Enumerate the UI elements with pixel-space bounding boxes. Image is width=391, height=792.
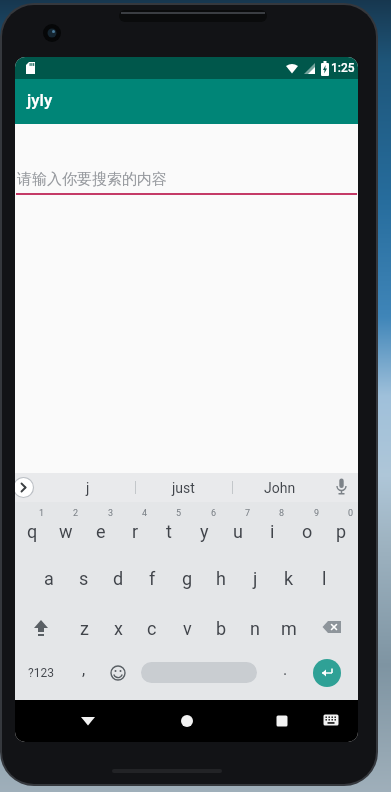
staticText: 1:25 — [331, 61, 355, 75]
button[interactable]: just — [143, 473, 223, 502]
staticText: 2 — [73, 508, 79, 519]
staticText: e — [96, 521, 106, 542]
button[interactable]: 请输入你要搜索的内容 — [15, 164, 358, 204]
staticText: f — [149, 568, 156, 589]
staticText: 8 — [279, 508, 285, 519]
button[interactable]: k — [272, 555, 306, 601]
button[interactable]: c — [135, 605, 169, 651]
button[interactable]: m — [272, 605, 306, 651]
staticText: just — [172, 480, 195, 496]
button[interactable] — [309, 605, 355, 651]
staticText: 0 — [348, 508, 354, 519]
staticText: s — [79, 568, 89, 589]
button[interactable]: v — [170, 605, 204, 651]
button[interactable]: z — [67, 605, 101, 651]
button[interactable]: t — [152, 508, 186, 554]
staticText: 7 — [245, 508, 251, 519]
staticText: w — [59, 521, 73, 542]
button[interactable] — [15, 477, 34, 498]
button[interactable]: s — [67, 555, 101, 601]
button[interactable]: j — [238, 555, 272, 601]
button[interactable]: l — [307, 555, 341, 601]
button[interactable]: ?123 — [18, 652, 64, 694]
button[interactable]: John — [240, 473, 320, 502]
staticText: r — [132, 521, 139, 542]
button[interactable] — [317, 706, 345, 734]
staticText: m — [281, 618, 297, 639]
staticText: o — [302, 521, 313, 542]
staticText: x — [114, 618, 123, 639]
staticText: ?123 — [28, 666, 54, 680]
button[interactable]: i — [255, 508, 289, 554]
staticText: h — [216, 568, 226, 589]
button[interactable] — [103, 652, 133, 694]
button[interactable]: a — [32, 555, 66, 601]
staticText: i — [270, 521, 275, 542]
button[interactable] — [141, 662, 257, 683]
button[interactable]: jyly — [15, 79, 358, 124]
button[interactable]: r — [118, 508, 152, 554]
staticText: . — [283, 660, 288, 679]
staticText: John — [264, 480, 296, 496]
staticText: 5 — [176, 508, 182, 519]
button[interactable]: w — [49, 508, 83, 554]
button[interactable]: o — [290, 508, 324, 554]
button[interactable]: . — [270, 652, 300, 694]
staticText: l — [322, 568, 327, 589]
button[interactable]: f — [135, 555, 169, 601]
staticText: t — [166, 521, 172, 542]
button[interactable]: , — [69, 652, 99, 694]
button[interactable] — [329, 475, 354, 500]
staticText: v — [183, 618, 192, 639]
button[interactable] — [73, 706, 103, 736]
staticText: b — [216, 618, 227, 639]
staticText: d — [113, 568, 124, 589]
button[interactable]: p — [324, 508, 358, 554]
staticText: jyly — [27, 90, 53, 110]
staticText: u — [233, 521, 243, 542]
staticText: k — [284, 568, 294, 589]
staticText: g — [182, 568, 193, 589]
staticText: 3 — [108, 508, 114, 519]
button[interactable]: h — [204, 555, 238, 601]
staticText: n — [250, 618, 260, 639]
staticText: c — [147, 618, 157, 639]
staticText: y — [200, 521, 209, 542]
button[interactable] — [313, 659, 341, 687]
button[interactable]: q — [15, 508, 49, 554]
staticText: j — [86, 480, 90, 496]
staticText: p — [336, 521, 347, 542]
staticText: 9 — [314, 508, 320, 519]
button[interactable]: x — [101, 605, 135, 651]
staticText: q — [27, 521, 38, 542]
button[interactable] — [267, 706, 297, 736]
button[interactable]: b — [204, 605, 238, 651]
staticText: j — [253, 568, 258, 589]
button[interactable] — [18, 605, 64, 651]
button[interactable]: j — [48, 473, 128, 502]
staticText: 请输入你要搜索的内容 — [17, 170, 167, 189]
staticText: z — [80, 618, 89, 639]
button[interactable]: g — [170, 555, 204, 601]
staticText: 4 — [142, 508, 148, 519]
button[interactable]: u — [221, 508, 255, 554]
staticText: 6 — [211, 508, 217, 519]
button[interactable]: d — [101, 555, 135, 601]
button[interactable]: e — [84, 508, 118, 554]
button[interactable]: y — [187, 508, 221, 554]
staticText: a — [44, 568, 54, 589]
button[interactable]: n — [238, 605, 272, 651]
staticText: 1 — [39, 508, 45, 519]
button[interactable] — [172, 706, 202, 736]
staticText: , — [82, 660, 86, 679]
